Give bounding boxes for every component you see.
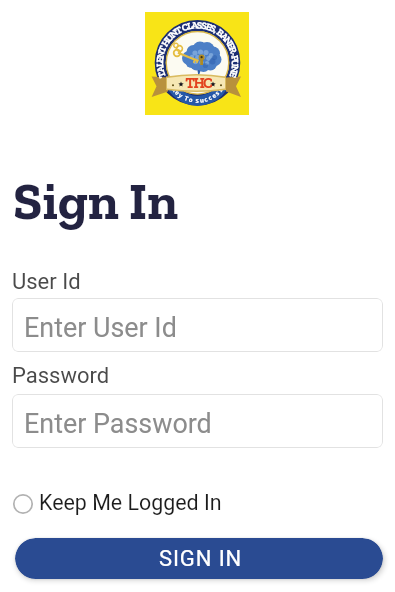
staticText: User Id — [12, 269, 81, 295]
button[interactable]: Enter User Id — [12, 298, 383, 352]
button[interactable]: Keep Me Logged In — [10, 488, 222, 516]
button[interactable]: Enter Password — [12, 394, 383, 448]
staticText: Keep Me Logged In — [39, 490, 222, 515]
button[interactable]: SIGN IN — [15, 538, 383, 579]
staticText: SIGN IN — [159, 546, 243, 572]
staticText: Enter User Id — [24, 312, 177, 344]
staticText: Enter Password — [24, 408, 212, 440]
staticText: Password — [12, 363, 110, 389]
staticText: Sign In — [13, 169, 179, 232]
